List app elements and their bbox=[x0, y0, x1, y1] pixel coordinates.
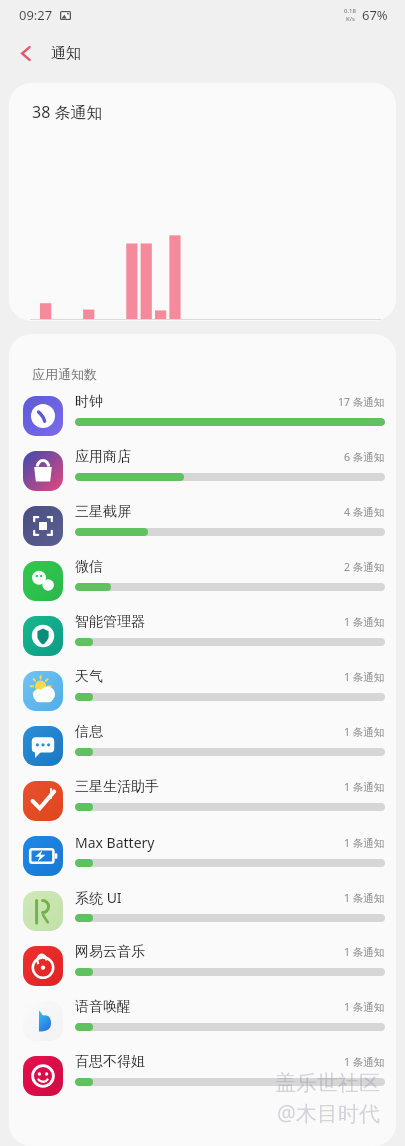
staticText: @木目时代 bbox=[277, 1099, 380, 1128]
staticText: 信息 bbox=[75, 723, 344, 741]
staticText: 0.18 bbox=[344, 7, 356, 15]
button[interactable]: 网易云音乐 bbox=[9, 943, 396, 998]
button[interactable]: 三星截屏 bbox=[9, 503, 396, 558]
button[interactable]: 系统 UI bbox=[9, 888, 396, 943]
staticText: 09:27 bbox=[19, 6, 53, 24]
staticText: 智能管理器 bbox=[75, 613, 344, 631]
staticText: 天气 bbox=[75, 668, 344, 686]
staticText: 时钟 bbox=[75, 393, 338, 411]
staticText: 67% bbox=[362, 6, 388, 24]
staticText: 三星生活助手 bbox=[75, 778, 344, 796]
staticText: 通知 bbox=[51, 44, 81, 63]
button[interactable]: 三星生活助手 bbox=[9, 778, 396, 833]
button[interactable]: 智能管理器 bbox=[9, 613, 396, 668]
staticText: 1 条通知 bbox=[344, 1000, 385, 1014]
staticText: 1 条通知 bbox=[344, 615, 385, 629]
staticText: 应用通知数 bbox=[32, 366, 97, 382]
staticText: 1 条通知 bbox=[344, 670, 385, 684]
staticText: 微信 bbox=[75, 558, 344, 576]
button[interactable]: 天气 bbox=[9, 668, 396, 723]
button[interactable]: 时钟 bbox=[9, 393, 396, 448]
staticText: 1 条通知 bbox=[344, 1055, 385, 1069]
staticText: 盖乐世社区 bbox=[275, 1070, 380, 1096]
button[interactable]: Max Battery bbox=[9, 833, 396, 888]
button[interactable]: Back bbox=[8, 35, 44, 71]
button[interactable]: 微信 bbox=[9, 558, 396, 613]
button[interactable]: 应用商店 bbox=[9, 448, 396, 503]
button[interactable]: 信息 bbox=[9, 723, 396, 778]
staticText: 6 条通知 bbox=[344, 450, 385, 464]
staticText: K/s bbox=[346, 15, 355, 23]
staticText: 应用商店 bbox=[75, 448, 344, 466]
staticText: 1 条通知 bbox=[344, 891, 385, 905]
staticText: 1 条通知 bbox=[344, 780, 385, 794]
staticText: 1 条通知 bbox=[344, 945, 385, 959]
staticText: 网易云音乐 bbox=[75, 943, 344, 961]
staticText: 系统 UI bbox=[75, 888, 344, 907]
staticText: Max Battery bbox=[75, 833, 344, 852]
staticText: 4 条通知 bbox=[344, 505, 385, 519]
staticText: 17 条通知 bbox=[338, 395, 385, 409]
staticText: 1 条通知 bbox=[344, 836, 385, 850]
button[interactable]: 语音唤醒 bbox=[9, 998, 396, 1053]
staticText: 语音唤醒 bbox=[75, 998, 344, 1016]
button[interactable]: 百思不得姐 bbox=[9, 1053, 396, 1108]
staticText: 38 条通知 bbox=[32, 101, 103, 123]
staticText: 2 条通知 bbox=[344, 560, 385, 574]
staticText: 百思不得姐 bbox=[75, 1053, 344, 1071]
staticText: 1 条通知 bbox=[344, 725, 385, 739]
staticText: 三星截屏 bbox=[75, 503, 344, 521]
